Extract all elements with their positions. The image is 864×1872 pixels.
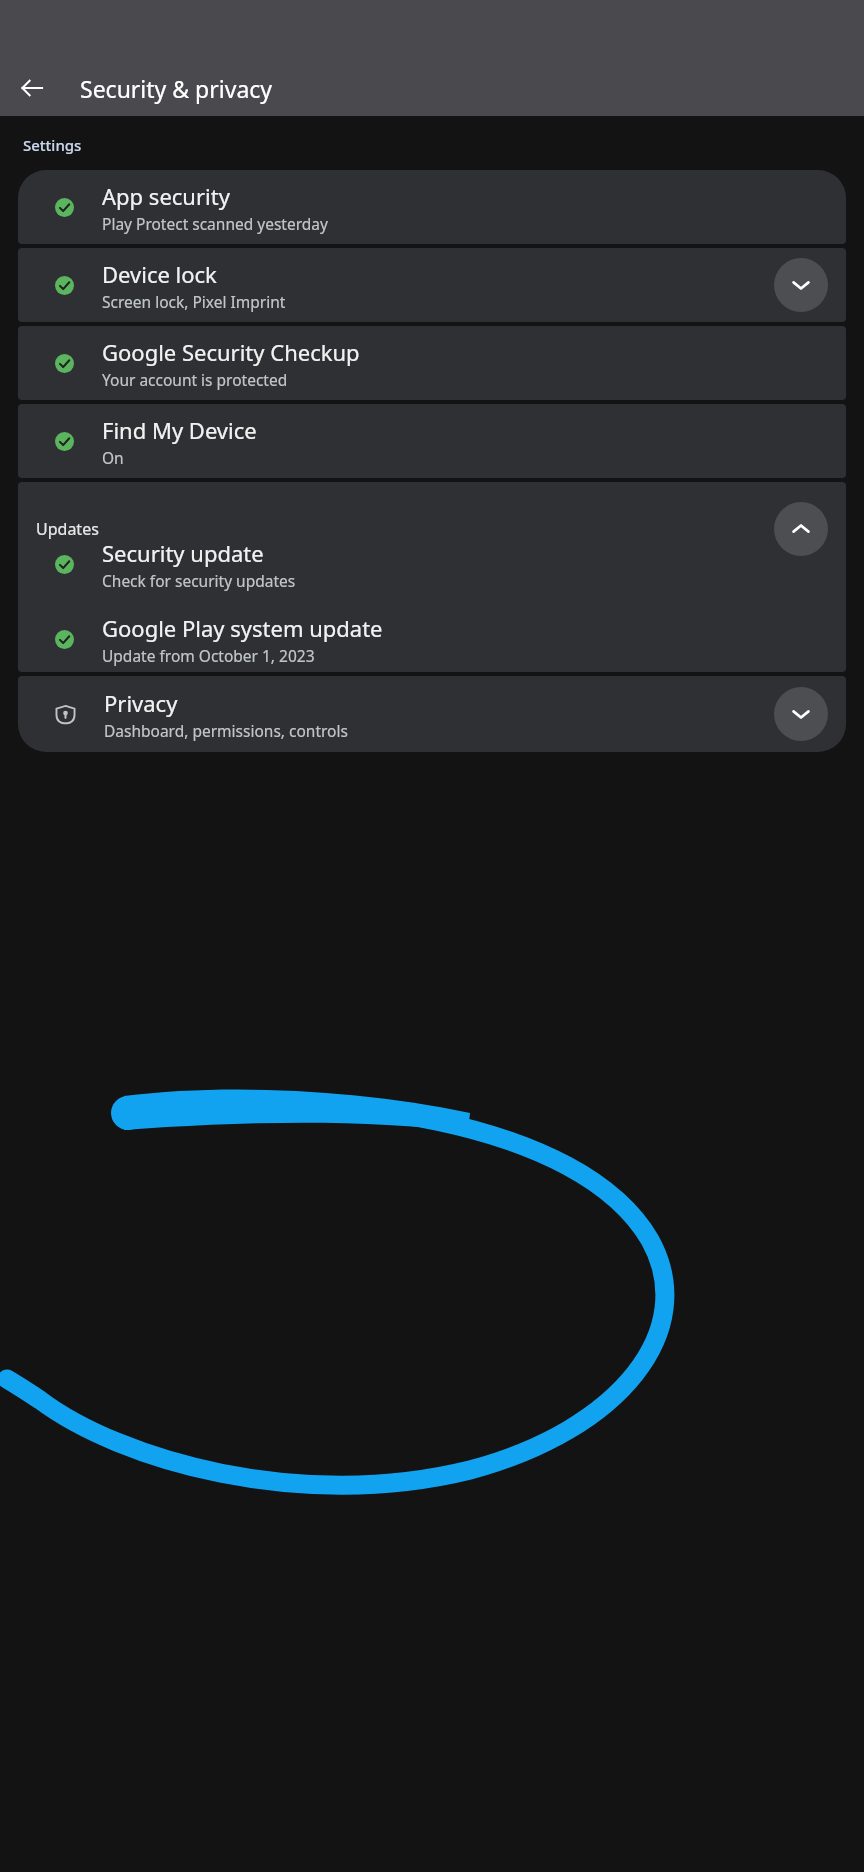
button[interactable]: Google Play system update — [18, 613, 846, 666]
staticText: App security — [102, 181, 230, 211]
staticText: On — [102, 447, 124, 468]
staticText: Play Protect scanned yesterday — [102, 213, 328, 234]
staticText: Updates — [36, 518, 99, 540]
staticText: Update from October 1, 2023 — [102, 645, 315, 666]
staticText: Your account is protected — [102, 369, 288, 390]
button[interactable]: App security — [18, 170, 846, 244]
button[interactable]: Back — [10, 66, 54, 110]
staticText: Privacy — [104, 688, 178, 718]
staticText: Screen lock, Pixel Imprint — [102, 291, 286, 312]
button[interactable]: Collapse — [774, 502, 828, 556]
button[interactable]: Expand — [774, 258, 828, 312]
button[interactable]: Device lock — [18, 248, 846, 322]
button[interactable]: Find My Device — [18, 404, 846, 478]
staticText: Dashboard, permissions, controls — [104, 720, 348, 741]
staticText: Settings — [23, 135, 82, 155]
staticText: Security update — [102, 538, 264, 568]
button[interactable]: Expand privacy — [774, 687, 828, 741]
button[interactable]: Security update — [18, 538, 846, 591]
staticText: Check for security updates — [102, 570, 296, 591]
staticText: Google Play system update — [102, 613, 383, 643]
staticText: Device lock — [102, 259, 217, 289]
button[interactable]: Privacy — [18, 676, 846, 752]
staticText: Google Security Checkup — [102, 337, 360, 367]
button[interactable]: Google Security Checkup — [18, 326, 846, 400]
staticText: Find My Device — [102, 415, 257, 445]
staticText: Security & privacy — [80, 73, 273, 104]
